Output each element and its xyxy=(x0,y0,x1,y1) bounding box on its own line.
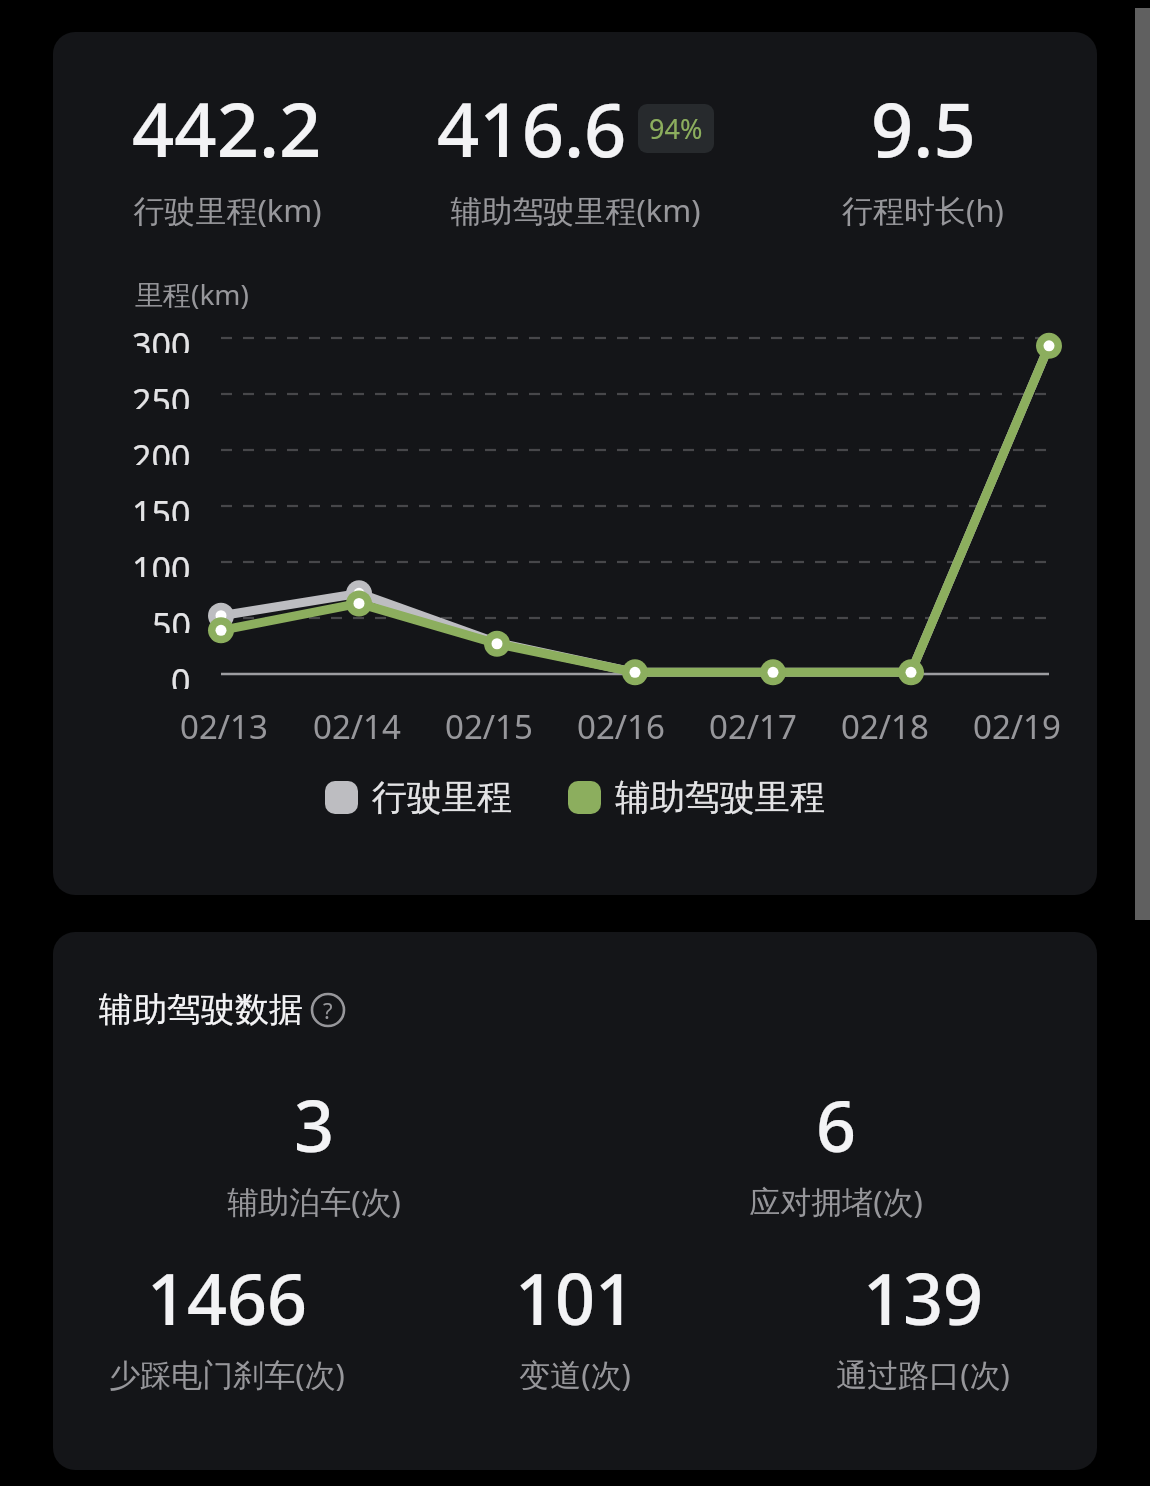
staticText: 辅助驾驶里程 xyxy=(615,775,825,819)
staticText: 行驶里程 xyxy=(372,775,512,819)
staticText: 行驶里程(km) xyxy=(133,189,322,231)
staticText: 94% xyxy=(649,110,703,147)
staticText: 100 xyxy=(132,546,191,577)
staticText: 02/18 xyxy=(841,704,929,749)
staticText: ? xyxy=(323,995,333,1025)
staticText: 02/16 xyxy=(577,704,665,749)
staticText: 里程(km) xyxy=(135,275,249,313)
button[interactable]: 6 xyxy=(575,1077,1097,1222)
staticText: 02/13 xyxy=(180,704,268,749)
staticText: 1466 xyxy=(147,1250,308,1345)
button[interactable]: 442.2 xyxy=(53,78,401,231)
staticText: 139 xyxy=(863,1250,984,1345)
button[interactable]: 行驶里程 xyxy=(325,775,512,819)
button[interactable]: 416.6 xyxy=(401,78,749,231)
staticText: 行程时长(h) xyxy=(842,189,1004,231)
staticText: 02/17 xyxy=(709,704,797,749)
button[interactable]: 3 xyxy=(53,1077,575,1222)
staticText: 416.6 xyxy=(437,78,627,179)
button[interactable]: 9.5 xyxy=(749,78,1097,231)
staticText: 200 xyxy=(132,434,191,465)
staticText: 02/14 xyxy=(313,704,401,749)
button[interactable]: Help, about assisted driving data xyxy=(310,992,346,1028)
staticText: 02/19 xyxy=(973,704,1061,749)
staticText: 50 xyxy=(152,602,191,633)
staticText: 通过路口(次) xyxy=(836,1353,1010,1395)
staticText: 少踩电门刹车(次) xyxy=(109,1353,345,1395)
button[interactable]: 1466 xyxy=(53,1250,401,1395)
staticText: 0 xyxy=(171,658,191,689)
staticText: 101 xyxy=(515,1250,636,1345)
staticText: 应对拥堵(次) xyxy=(749,1180,923,1222)
staticText: 02/15 xyxy=(445,704,533,749)
staticText: 辅助泊车(次) xyxy=(227,1180,401,1222)
staticText: 9.5 xyxy=(871,78,976,179)
staticText: 300 xyxy=(132,322,191,353)
staticText: 442.2 xyxy=(132,78,322,179)
button[interactable]: 辅助驾驶数据 xyxy=(53,932,1097,1470)
staticText: 变道(次) xyxy=(519,1353,631,1395)
staticText: 辅助驾驶数据 xyxy=(99,988,303,1031)
button[interactable]: 139 xyxy=(749,1250,1097,1395)
staticText: 250 xyxy=(132,378,191,409)
button[interactable]: 442.2 xyxy=(53,32,1097,895)
button[interactable]: 辅助驾驶里程 xyxy=(568,775,825,819)
staticText: 3 xyxy=(294,1077,335,1172)
staticText: 辅助驾驶里程(km) xyxy=(450,189,701,231)
button[interactable]: 101 xyxy=(401,1250,749,1395)
staticText: 6 xyxy=(816,1077,857,1172)
staticText: 150 xyxy=(132,490,191,521)
